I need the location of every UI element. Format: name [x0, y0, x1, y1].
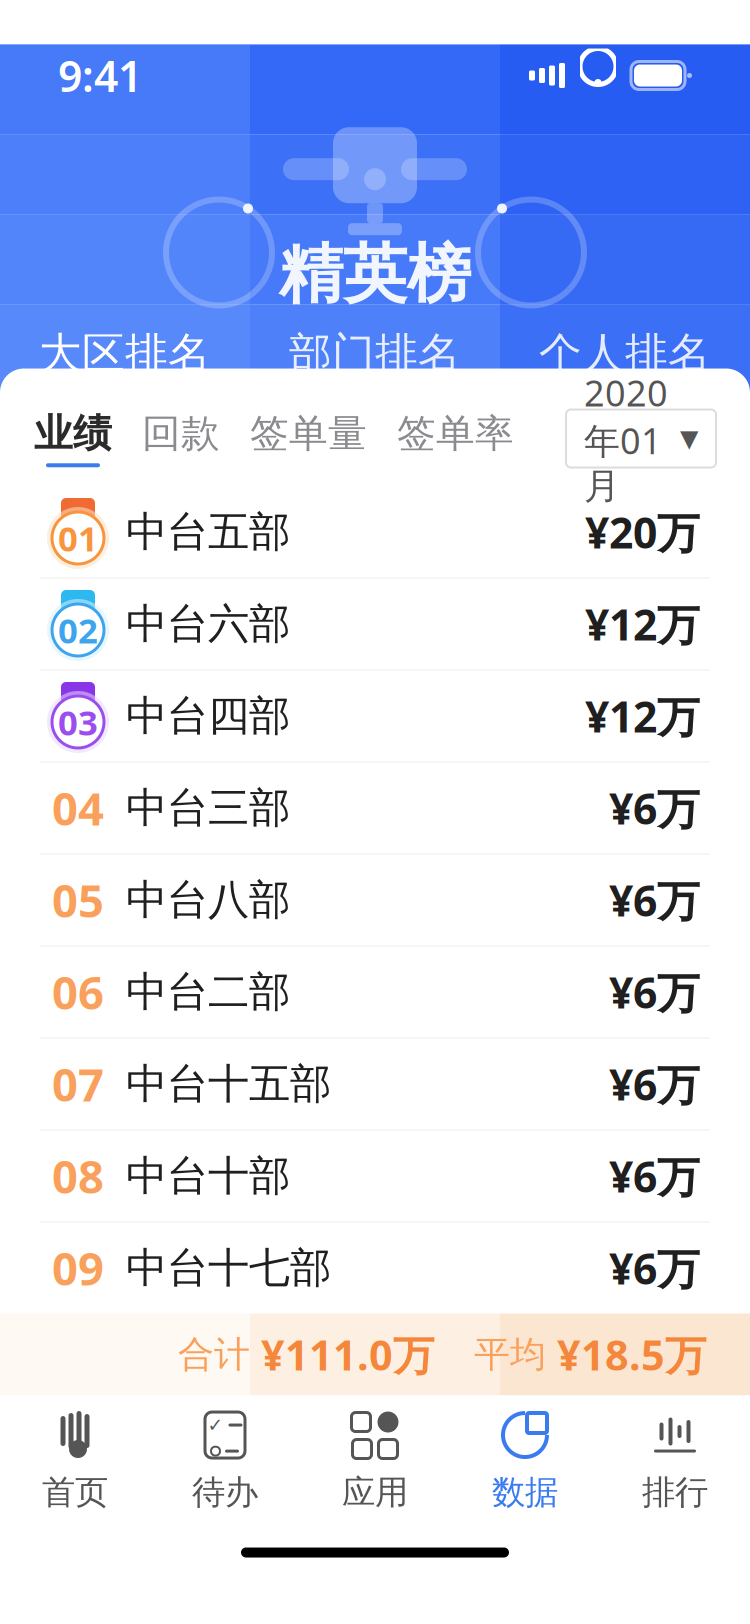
staticText: 中台四部	[126, 691, 290, 741]
button[interactable]: ✓	[150, 1395, 300, 1525]
button[interactable]: 签单率	[397, 410, 544, 467]
button[interactable]: 个人排名	[500, 317, 750, 403]
staticText: 09	[52, 1238, 104, 1298]
staticText: ¥6万	[609, 780, 700, 836]
staticText: 05	[52, 870, 104, 930]
staticText: 06	[52, 962, 104, 1022]
button[interactable]: 04	[0, 762, 750, 853]
button[interactable]: 03	[0, 670, 750, 761]
button[interactable]: 回款	[142, 410, 250, 467]
staticText: 07	[52, 1054, 104, 1114]
staticText: 中台五部	[126, 507, 290, 557]
staticText: 合计	[178, 1332, 250, 1377]
staticText: 中台六部	[126, 599, 290, 649]
button[interactable]: 07	[0, 1038, 750, 1129]
staticText: 02	[58, 607, 98, 653]
button[interactable]: 08	[0, 1130, 750, 1221]
staticText: 中台十七部	[126, 1243, 331, 1293]
button[interactable]: 01	[0, 486, 750, 577]
staticText: ¥18.5万	[546, 1327, 706, 1382]
staticText: 中台二部	[126, 967, 290, 1017]
button[interactable]: 业绩	[34, 410, 142, 467]
staticText: 2020年01月	[584, 369, 668, 508]
button[interactable]: 09	[0, 1222, 750, 1313]
button[interactable]: 05	[0, 854, 750, 945]
staticText: 个人排名	[539, 327, 711, 380]
staticText: 签单量	[250, 410, 367, 457]
button[interactable]: 部门排名	[250, 317, 500, 403]
staticText: 9:41	[58, 47, 142, 104]
staticText: 大区排名	[39, 327, 211, 380]
staticText: 平均	[474, 1332, 546, 1377]
button[interactable]: 06	[0, 946, 750, 1037]
staticText: ¥6万	[609, 1056, 700, 1112]
staticText: 08	[52, 1146, 104, 1206]
staticText: ✓	[207, 1414, 223, 1436]
button[interactable]: 首页	[0, 1395, 150, 1525]
staticText: ¥6万	[609, 1148, 700, 1204]
staticText: ¥111.0万	[250, 1327, 434, 1382]
staticText: 排行	[642, 1472, 708, 1513]
staticText: 03	[58, 699, 98, 745]
staticText: ¥6万	[609, 1240, 700, 1296]
button[interactable]: 2020年01月	[566, 409, 716, 467]
staticText: 数据	[492, 1472, 558, 1513]
staticText: 中台十部	[126, 1151, 290, 1201]
staticText: 回款	[142, 410, 220, 457]
staticText: ▼	[680, 425, 698, 452]
staticText: ¥6万	[609, 872, 700, 928]
staticText: 中台十五部	[126, 1059, 331, 1109]
staticText: 应用	[342, 1472, 408, 1513]
button[interactable]: 02	[0, 578, 750, 669]
button[interactable]: 排行	[600, 1395, 750, 1525]
staticText: 04	[52, 778, 104, 838]
staticText: 签单率	[397, 410, 514, 457]
button[interactable]: 应用	[300, 1395, 450, 1525]
button[interactable]: 数据	[450, 1395, 600, 1525]
staticText: ¥12万	[585, 688, 700, 744]
staticText: 精英榜	[279, 235, 471, 314]
staticText: 01	[58, 515, 98, 561]
staticText: ¥6万	[609, 964, 700, 1020]
staticText: 业绩	[34, 410, 112, 457]
staticText: 部门排名	[289, 327, 461, 380]
button[interactable]: 签单量	[250, 410, 397, 467]
staticText: 首页	[42, 1472, 108, 1513]
staticText: 中台三部	[126, 783, 290, 833]
button[interactable]: 大区排名	[0, 317, 250, 403]
staticText: ¥12万	[585, 596, 700, 652]
staticText: 中台八部	[126, 875, 290, 925]
staticText: 待办	[192, 1472, 258, 1513]
staticText: ¥20万	[585, 504, 700, 560]
